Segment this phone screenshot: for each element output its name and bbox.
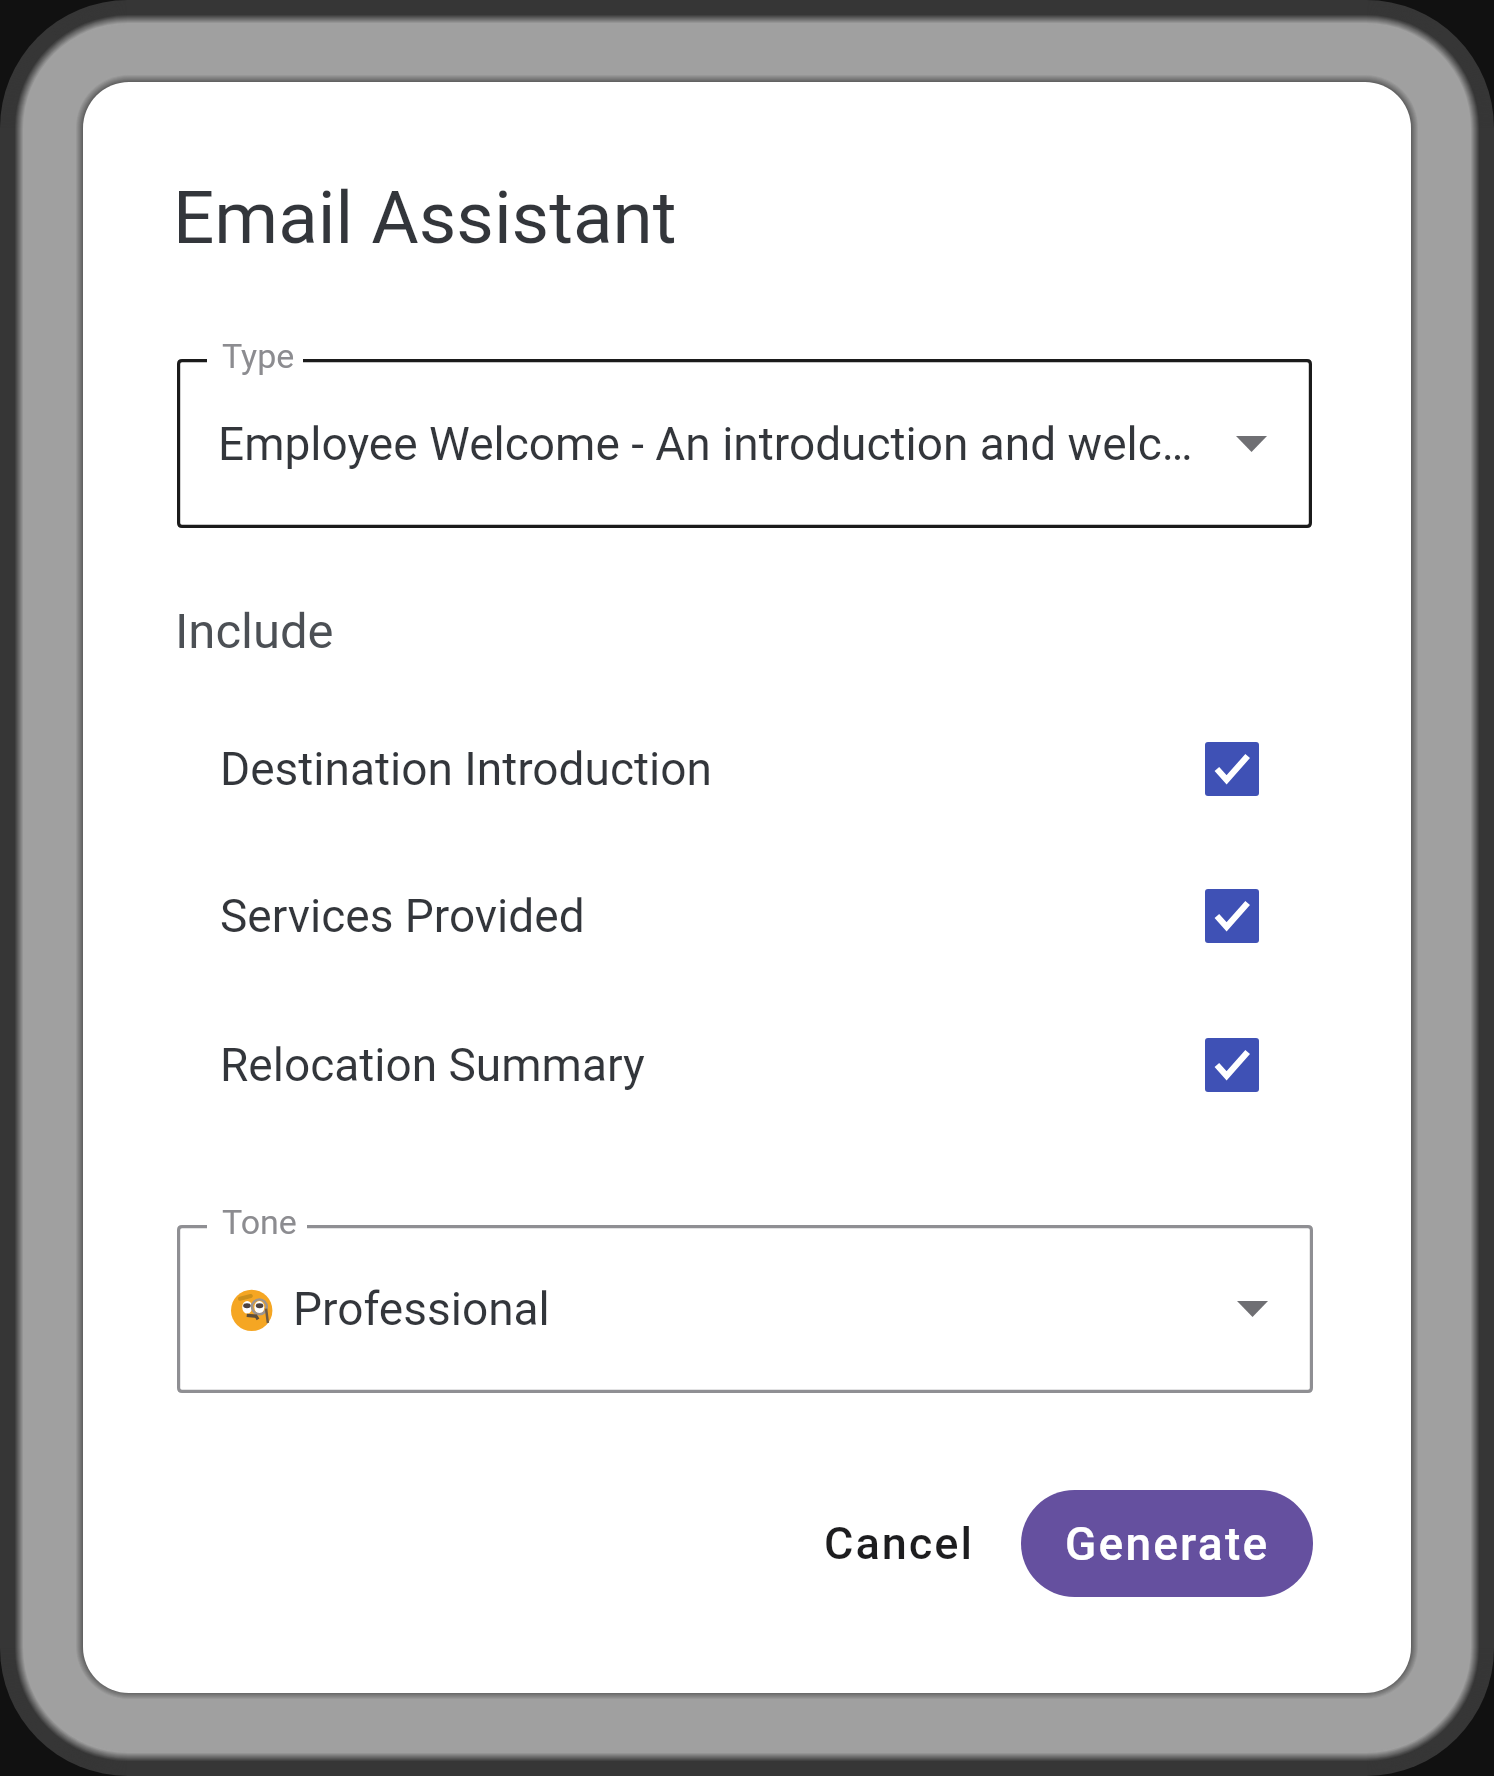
other: Open Tone dropdown — [1237, 1301, 1268, 1317]
button[interactable]: Services Provided — [83, 842, 1411, 990]
button[interactable]: Tone — [177, 1225, 1313, 1393]
other: Relocation Summary checked — [1205, 1038, 1259, 1092]
staticText: Tone — [222, 1202, 297, 1242]
button[interactable]: Cancel — [787, 1490, 1011, 1597]
staticText: Employee Welcome - An introduction and w… — [218, 417, 1193, 471]
staticText: Email Assistant — [173, 175, 677, 260]
button[interactable]: Type — [177, 359, 1312, 528]
other: Open Type dropdown — [1236, 436, 1267, 452]
staticText: Cancel — [824, 1517, 975, 1570]
other: Services Provided checked — [1205, 889, 1259, 943]
staticText: Services Provided — [220, 889, 585, 943]
staticText: Destination Introduction — [220, 742, 712, 796]
staticText: Type — [222, 336, 295, 376]
staticText: Include — [175, 603, 334, 660]
other: Destination Introduction checked — [1205, 742, 1259, 796]
button[interactable]: Destination Introduction — [83, 695, 1411, 843]
staticText: Generate — [1065, 1517, 1270, 1571]
button[interactable]: Relocation Summary — [83, 991, 1411, 1139]
staticText: Professional — [293, 1282, 550, 1336]
button[interactable]: Generate — [1021, 1490, 1313, 1597]
staticText: Relocation Summary — [220, 1038, 645, 1092]
